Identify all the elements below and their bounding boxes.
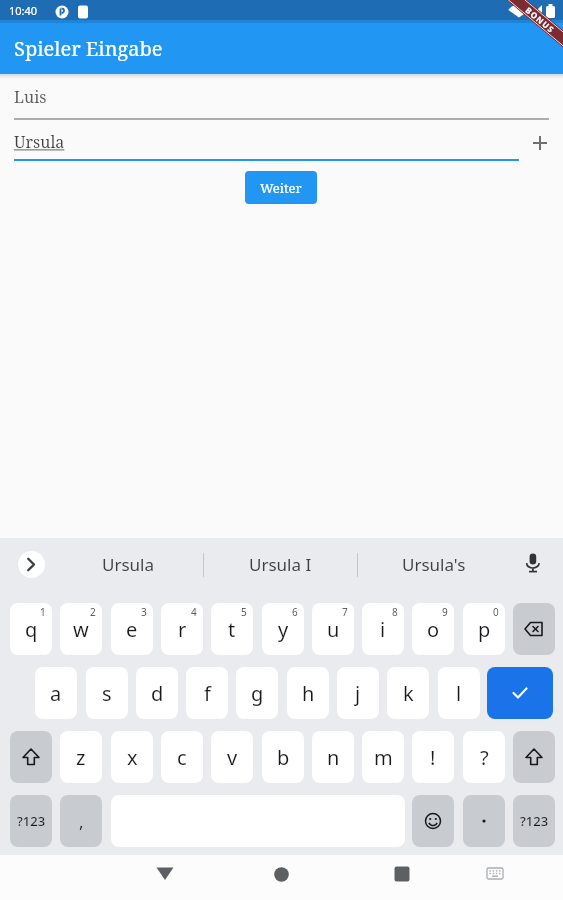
button[interactable]: b [262, 731, 304, 783]
staticText: 5 [241, 605, 247, 619]
button[interactable]: p [463, 603, 505, 655]
button[interactable]: l [438, 667, 480, 719]
staticText: , [79, 810, 84, 833]
button[interactable]: j [337, 667, 379, 719]
staticText: BONUS [523, 4, 557, 35]
staticText: i [380, 616, 386, 643]
button[interactable]: ? [463, 731, 505, 783]
staticText: 8 [392, 605, 398, 619]
button[interactable]: Weiter [245, 171, 317, 204]
staticText: h [302, 680, 315, 707]
staticText: k [403, 680, 414, 707]
staticText: u [327, 616, 340, 643]
button[interactable] [262, 857, 302, 897]
staticText: r [178, 616, 187, 643]
button[interactable]: Ursula I [210, 551, 350, 578]
button[interactable] [145, 857, 185, 897]
staticText: n [327, 744, 340, 771]
button[interactable] [463, 795, 505, 847]
staticText: 7 [342, 605, 348, 619]
button[interactable]: z [60, 731, 102, 783]
button[interactable]: ! [412, 731, 454, 783]
button[interactable]: q [10, 603, 52, 655]
button[interactable]: Luis [14, 86, 549, 108]
staticText: c [177, 744, 187, 771]
button[interactable]: s [86, 667, 128, 719]
staticText: f [204, 680, 211, 707]
staticText: t [228, 616, 236, 643]
button[interactable]: v [211, 731, 253, 783]
button[interactable] [526, 129, 554, 157]
staticText: 3 [141, 605, 147, 619]
staticText: a [50, 680, 62, 707]
button[interactable] [412, 795, 454, 847]
staticText: g [251, 680, 264, 707]
button[interactable] [513, 603, 555, 655]
staticText: q [25, 616, 38, 643]
staticText: Luis [14, 86, 47, 108]
button[interactable]: r [161, 603, 203, 655]
staticText: Ursula I [249, 553, 312, 576]
staticText: z [76, 744, 86, 771]
staticText: s [102, 680, 112, 707]
button[interactable]: Ursula [63, 551, 193, 578]
button[interactable]: t [211, 603, 253, 655]
staticText: w [73, 616, 89, 643]
button[interactable]: y [262, 603, 304, 655]
staticText: ? [480, 744, 489, 771]
button[interactable]: i [362, 603, 404, 655]
button[interactable]: n [312, 731, 354, 783]
button[interactable]: Ursula's [364, 551, 504, 578]
staticText: Ursula [14, 131, 65, 153]
button[interactable]: f [186, 667, 228, 719]
button[interactable]: c [161, 731, 203, 783]
button[interactable]: , [60, 795, 102, 847]
staticText: 6 [292, 605, 298, 619]
staticText: x [127, 744, 138, 771]
staticText: ?123 [17, 812, 46, 830]
button[interactable]: ?123 [10, 795, 52, 847]
staticText: j [355, 680, 361, 707]
staticText: e [126, 616, 138, 643]
staticText: l [456, 680, 462, 707]
staticText: 9 [442, 605, 448, 619]
button[interactable] [10, 731, 52, 783]
staticText: ! [430, 744, 436, 771]
staticText: Ursula's [402, 553, 466, 576]
button[interactable]: ?123 [513, 795, 555, 847]
button[interactable]: e [111, 603, 153, 655]
staticText: 2 [90, 605, 96, 619]
button[interactable] [518, 549, 548, 579]
staticText: Spieler Eingabe [14, 35, 163, 62]
button[interactable]: u [312, 603, 354, 655]
staticText: b [277, 744, 290, 771]
button[interactable]: k [387, 667, 429, 719]
button[interactable]: m [362, 731, 404, 783]
button[interactable]: g [236, 667, 278, 719]
button[interactable] [513, 731, 555, 783]
staticText: p [478, 616, 491, 643]
staticText: ?123 [520, 812, 549, 830]
button[interactable]: o [412, 603, 454, 655]
staticText: Weiter [260, 179, 302, 197]
button[interactable] [477, 857, 517, 897]
button[interactable] [18, 551, 45, 578]
button[interactable]: d [136, 667, 178, 719]
staticText: v [227, 744, 238, 771]
staticText: m [374, 744, 393, 771]
staticText: 4 [191, 605, 197, 619]
button[interactable]: x [111, 731, 153, 783]
staticText: o [427, 616, 440, 643]
button[interactable]: w [60, 603, 102, 655]
button[interactable]: Ursula [14, 131, 519, 153]
button[interactable] [487, 667, 553, 719]
button[interactable]: Spieler Eingabe [14, 33, 314, 63]
button[interactable]: h [287, 667, 329, 719]
staticText: Ursula [102, 553, 155, 576]
staticText: 0 [493, 605, 499, 619]
staticText: d [151, 680, 164, 707]
staticText: 10:40 [9, 3, 38, 18]
button[interactable] [382, 857, 422, 897]
button[interactable]: a [35, 667, 77, 719]
